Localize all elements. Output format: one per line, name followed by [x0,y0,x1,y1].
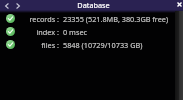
button[interactable]: Status OK [6,40,15,49]
button[interactable]: Close [172,0,183,11]
button[interactable]: Status OK [0,12,183,25]
button[interactable]: Forward [12,0,23,11]
staticText: 23355 (521.8MB, 380.3GB free) [63,14,169,24]
button[interactable]: Status OK [0,25,183,38]
button[interactable]: Status OK [0,38,183,51]
staticText: files : [15,40,59,50]
staticText: index : [15,27,59,37]
button[interactable]: Status OK [6,14,15,23]
staticText: Database [2,0,183,10]
staticText: records : [15,14,59,24]
button[interactable]: Status OK [6,27,15,36]
staticText: 0 msec [63,27,88,37]
button[interactable]: Back [1,0,12,11]
staticText: 5848 (10729/10733 GB) [63,40,143,50]
button[interactable]: Scroll [175,11,183,100]
